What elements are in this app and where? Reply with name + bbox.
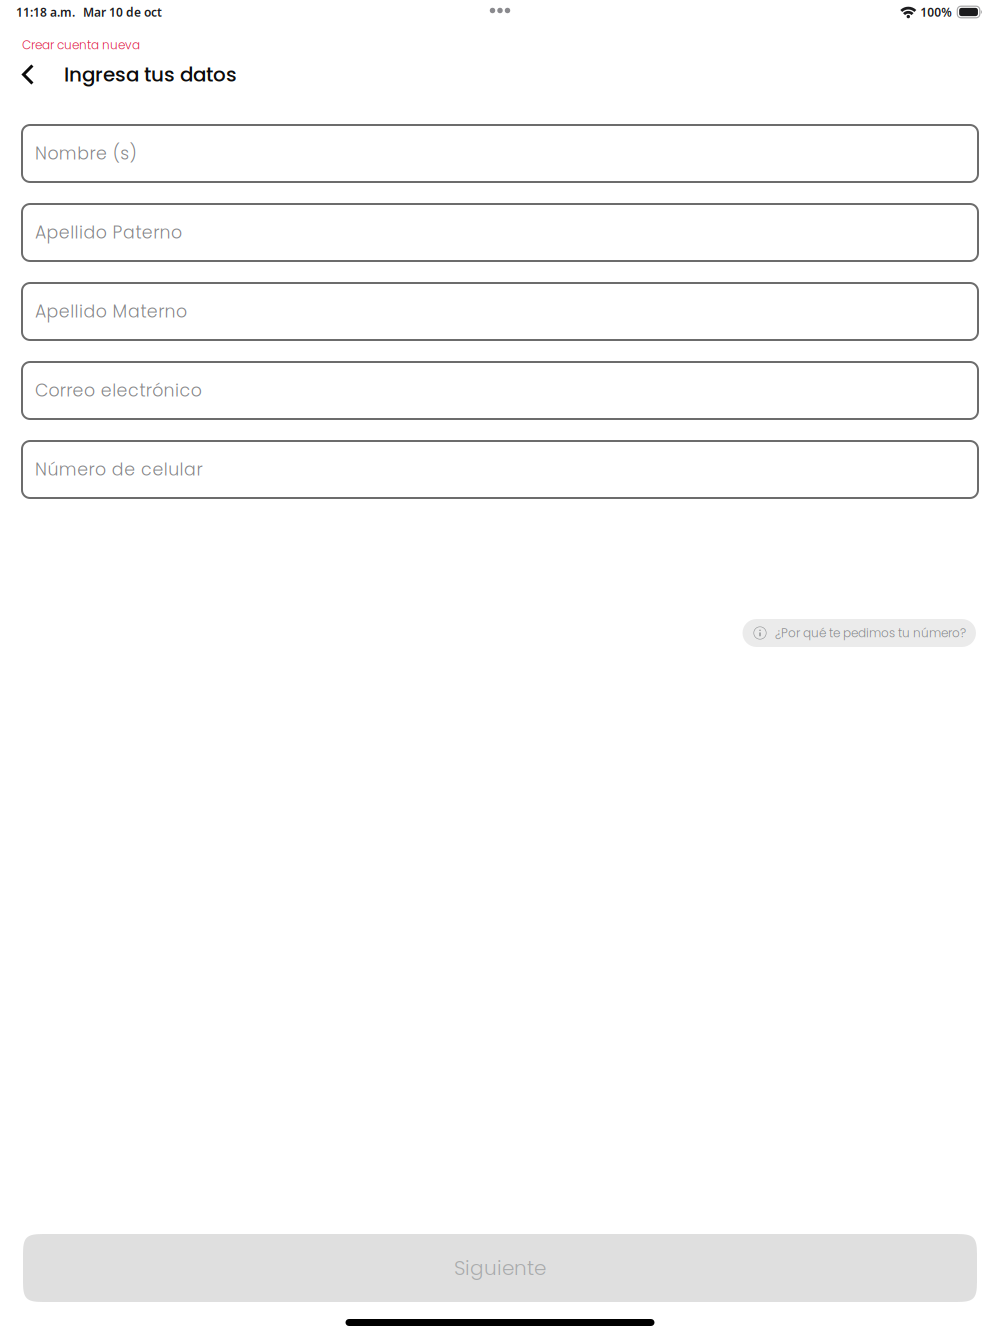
staticText: ¿Por qué te pedimos tu número? (775, 625, 966, 641)
button[interactable]: Correo electrónico (22, 362, 978, 419)
button[interactable]: Nombre (s) (22, 125, 978, 182)
staticText: Ingresa tus datos (64, 61, 237, 88)
staticText: Correo electrónico (35, 378, 202, 403)
button[interactable]: ¿Por qué te pedimos tu número? (742, 619, 976, 647)
button[interactable]: Back (0, 56, 45, 93)
staticText: 11:18 a.m. (16, 4, 75, 20)
staticText: Siguiente (454, 1254, 546, 1282)
staticText: Apellido Materno (35, 299, 187, 324)
staticText: Nombre (s) (35, 141, 137, 166)
button[interactable]: Crear cuenta nueva (22, 36, 140, 54)
staticText: 100% (920, 4, 952, 20)
staticText: Crear cuenta nueva (22, 37, 140, 53)
button[interactable]: Número de celular (22, 441, 978, 498)
button[interactable]: Apellido Materno (22, 283, 978, 340)
button[interactable]: Siguiente (23, 1234, 977, 1302)
button[interactable]: Apellido Paterno (22, 204, 978, 261)
staticText: Apellido Paterno (35, 220, 182, 245)
staticText: Número de celular (35, 457, 202, 482)
staticText: Mar 10 de oct (83, 4, 162, 20)
